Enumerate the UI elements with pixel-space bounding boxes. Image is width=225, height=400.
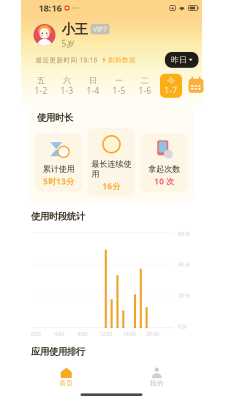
staticText: 60 分 — [178, 230, 190, 237]
staticText: 应用使用排行 — [31, 346, 85, 357]
staticText: 使用时长 — [37, 112, 73, 123]
staticText: 5岁 — [61, 38, 74, 49]
staticText: 1-7 — [164, 85, 177, 96]
button[interactable]: 二 — [132, 73, 158, 99]
staticText: 累计使用 — [43, 164, 75, 174]
button[interactable]: 首页 — [21, 367, 111, 387]
staticText: 10 次 — [154, 176, 174, 187]
staticText: 1-4 — [86, 85, 99, 96]
button[interactable]: 今 — [158, 73, 184, 99]
button[interactable]: 五 — [28, 73, 54, 99]
staticText: 0:00 — [31, 330, 41, 337]
staticText: 0 分 — [178, 323, 187, 330]
staticText: 刷新数据 — [108, 56, 136, 64]
staticText: 五 — [37, 76, 45, 85]
staticText: 最近更新时间 18:16 — [35, 55, 97, 64]
staticText: 1-2 — [34, 85, 47, 96]
staticText: 我的 — [150, 379, 164, 387]
staticText: 一 — [115, 76, 123, 85]
button[interactable]: 日历 — [184, 73, 208, 99]
staticText: 小王 — [61, 21, 87, 37]
button[interactable]: 我的 — [111, 367, 202, 387]
button[interactable]: 刷新数据 — [97, 56, 136, 64]
staticText: 8:00 — [77, 330, 87, 337]
staticText: 日 — [89, 76, 97, 85]
button[interactable]: 昨日 — [165, 52, 198, 68]
staticText: 今 — [167, 76, 175, 85]
staticText: 12:00 — [99, 330, 112, 337]
staticText: 拿起次数 — [148, 164, 180, 174]
staticText: 4:00 — [54, 330, 64, 337]
staticText: 首页 — [59, 379, 73, 387]
staticText: 40 分 — [178, 261, 190, 268]
staticText: 昨日 — [171, 55, 187, 65]
staticText: 二 — [141, 76, 149, 85]
staticText: 1-3 — [60, 85, 73, 96]
staticText: 5时13分 — [43, 176, 74, 187]
button[interactable]: 日 — [80, 73, 106, 99]
staticText: 20:00 — [146, 330, 159, 337]
button[interactable]: 六 — [54, 73, 80, 99]
staticText: VIP7 — [93, 25, 107, 34]
staticText: 16:00 — [123, 330, 136, 337]
button[interactable]: 一 — [106, 73, 132, 99]
staticText: 18:16 — [38, 2, 61, 14]
staticText: 使用时段统计 — [31, 211, 85, 222]
staticText: 最长连续使用 — [91, 159, 131, 179]
staticText: 16分 — [102, 181, 120, 191]
staticText: 1-5 — [112, 85, 125, 96]
staticText: 1-6 — [138, 85, 151, 96]
staticText: 六 — [63, 76, 71, 85]
staticText: 20 分 — [178, 292, 190, 299]
